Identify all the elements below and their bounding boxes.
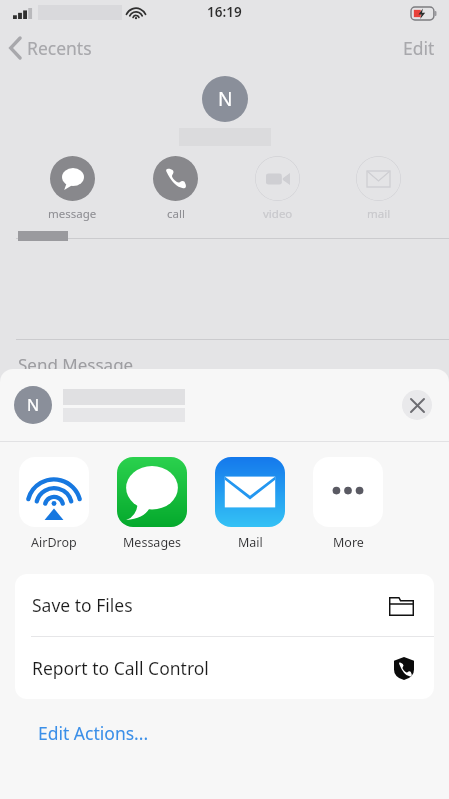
staticText: N: [218, 86, 233, 112]
button[interactable]: Mail: [210, 457, 290, 551]
staticText: video: [263, 206, 293, 222]
button[interactable]: Report to Call Control: [15, 637, 434, 699]
button[interactable]: Close: [402, 390, 432, 420]
button[interactable]: Save to Files: [15, 574, 434, 636]
staticText: More: [333, 534, 364, 551]
staticText: Mail: [238, 534, 263, 551]
button[interactable]: Recents: [0, 30, 100, 66]
staticText: Send Message: [18, 353, 134, 376]
staticText: Report to Call Control: [32, 656, 209, 680]
button[interactable]: message: [44, 152, 101, 226]
staticText: Save to Files: [32, 593, 133, 617]
staticText: Messages: [123, 534, 182, 551]
button[interactable]: Edit Actions...: [0, 717, 449, 755]
staticText: call: [167, 206, 185, 222]
staticText: mail: [367, 206, 391, 222]
button[interactable]: Edit: [389, 30, 449, 66]
button[interactable]: Messages: [112, 457, 192, 551]
staticText: Recents: [27, 36, 92, 60]
button[interactable]: More: [308, 457, 388, 551]
button[interactable]: AirDrop: [14, 457, 94, 551]
staticText: Share Contact: [18, 399, 130, 422]
button[interactable]: video: [251, 152, 304, 226]
staticText: Edit: [403, 36, 435, 60]
staticText: AirDrop: [31, 534, 77, 551]
button[interactable]: mail: [352, 152, 405, 226]
staticText: Edit Actions...: [38, 721, 149, 745]
staticText: message: [48, 206, 97, 222]
staticText: 16:19: [207, 3, 242, 21]
staticText: N: [27, 394, 40, 416]
button[interactable]: call: [149, 152, 202, 226]
